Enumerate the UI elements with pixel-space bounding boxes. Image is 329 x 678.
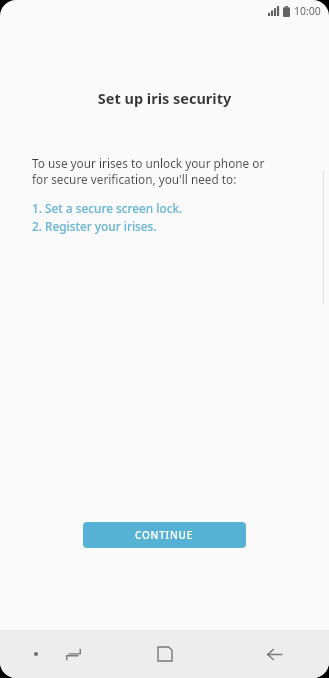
button[interactable]: Recents	[56, 637, 90, 671]
staticText: To use your irises to unlock your phone …	[32, 155, 265, 188]
button[interactable]: 1. Set a secure screen lock.	[32, 200, 183, 216]
staticText: CONTINUE	[135, 528, 194, 542]
button[interactable]: CONTINUE	[83, 522, 246, 548]
staticText: 10:00	[294, 4, 321, 18]
other: Indicator	[26, 644, 46, 664]
button[interactable]: Home	[147, 636, 183, 672]
staticText: Set up iris security	[0, 88, 329, 108]
button[interactable]: Back	[257, 637, 291, 671]
button[interactable]: 2. Register your irises.	[32, 218, 157, 234]
